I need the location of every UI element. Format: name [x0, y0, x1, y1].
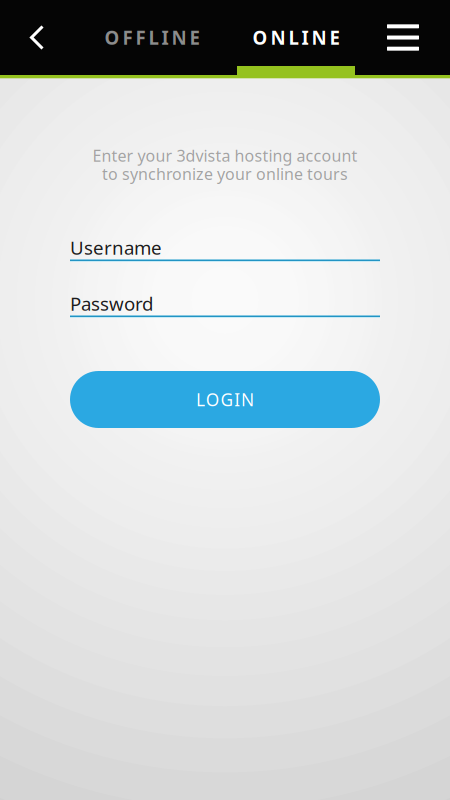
- staticText: OFFLINE: [104, 25, 199, 50]
- button[interactable]: ONLINE: [237, 0, 355, 75]
- button[interactable]: LOGIN: [70, 371, 380, 428]
- button[interactable]: Back: [0, 0, 74, 75]
- button[interactable]: OFFLINE: [93, 0, 211, 75]
- staticText: LOGIN: [196, 388, 254, 411]
- button[interactable]: Menu: [371, 0, 435, 75]
- staticText: ONLINE: [252, 25, 339, 50]
- staticText: Password: [70, 291, 153, 316]
- staticText: to synchronize your online tours: [102, 163, 348, 184]
- staticText: Enter your 3dvista hosting account: [92, 145, 357, 166]
- staticText: Username: [70, 235, 162, 260]
